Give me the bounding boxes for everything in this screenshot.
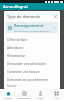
button[interactable]: Attestation <box>4 44 60 52</box>
staticText: Demandes <box>18 97 30 100</box>
staticText: Offre tarifaire <box>7 38 28 42</box>
staticText: Annuler <box>7 84 17 87</box>
button[interactable]: Demander une attestation <box>4 60 60 68</box>
button[interactable]: Plus <box>48 89 64 100</box>
staticText: Demander une attestation <box>7 62 47 66</box>
button[interactable]: Contester une facture <box>4 68 60 76</box>
button[interactable]: Demandes <box>16 89 32 100</box>
button[interactable]: Offre tarifaire <box>4 36 60 44</box>
button[interactable]: Accueil <box>0 89 16 100</box>
staticText: Plus <box>54 97 59 100</box>
staticText: Amoulibgrai <box>3 4 28 10</box>
staticText: Réclamation <box>7 54 26 58</box>
staticText: Informations et aides diverses <box>14 29 50 32</box>
staticText: Contester une facture <box>7 70 40 74</box>
button[interactable]: Fermer <box>53 14 58 19</box>
button[interactable]: Profil <box>32 89 48 100</box>
staticText: Profil <box>37 97 43 100</box>
button[interactable]: Demande de raccordement <box>4 76 60 84</box>
staticText: Accueil <box>4 97 12 100</box>
button[interactable]: Renseignement et assistance <box>6 22 58 33</box>
button[interactable]: Réclamation <box>4 52 60 60</box>
staticText: Renseignement et assistance <box>14 23 53 28</box>
staticText: Demande de raccordement <box>7 78 48 82</box>
staticText: Type de demande <box>7 14 53 19</box>
staticText: Attestation <box>7 46 24 50</box>
